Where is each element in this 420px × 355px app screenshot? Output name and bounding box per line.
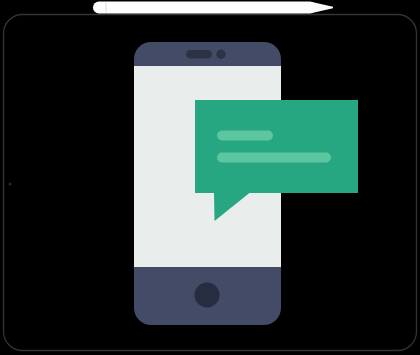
button[interactable]: Messaging illustration <box>0 0 420 355</box>
